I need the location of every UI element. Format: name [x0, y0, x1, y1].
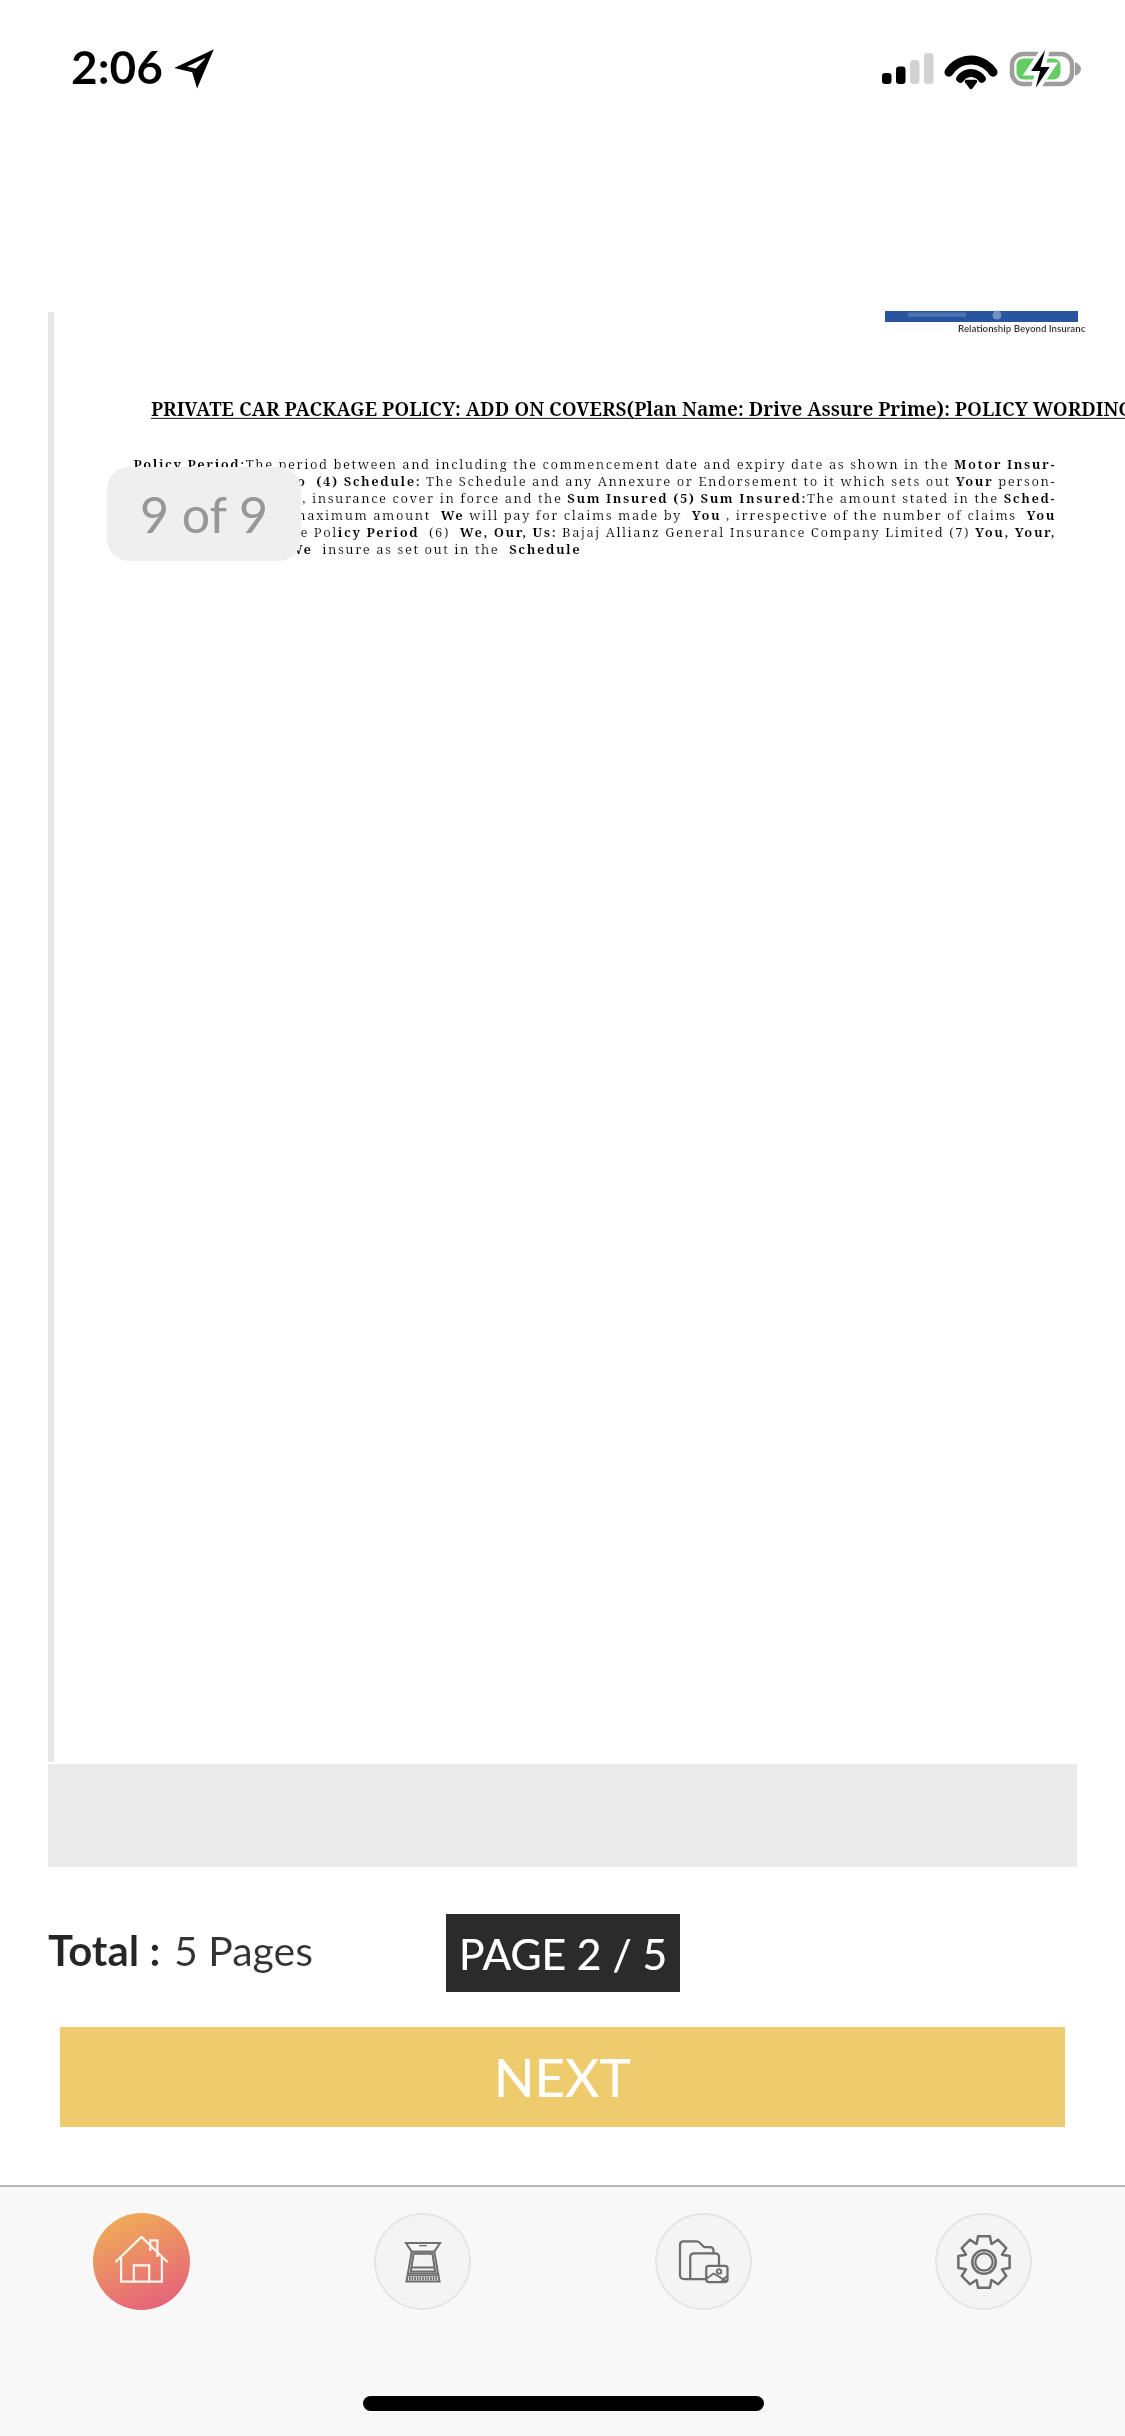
staticText: al details, insurance cover in force and…	[131, 489, 1056, 507]
button[interactable]: Home	[93, 2213, 190, 2310]
staticText: 9 of 9	[140, 484, 269, 544]
button[interactable]: Settings	[935, 2213, 1032, 2310]
staticText: ance Po (4) Schedule: The Schedule and a…	[131, 472, 1056, 490]
button[interactable]: Documents	[655, 2213, 752, 2310]
staticText: ule as the maximum amount We will pay fo…	[131, 506, 1056, 524]
staticText: make during the Policy Period (6) We, Ou…	[131, 523, 1056, 541]
staticText: PAGE 2 / 5	[459, 1928, 668, 1979]
button[interactable]: Scan	[374, 2213, 471, 2310]
staticText: PRIVATE CAR PACKAGE POLICY: ADD ON COVER…	[151, 396, 1125, 422]
button[interactable]: PAGE 2 / 5	[446, 1914, 680, 1992]
staticText: Policy Period:The period between and inc…	[131, 455, 1056, 473]
staticText: 5 Pages	[174, 1926, 314, 1975]
button[interactable]: Document page preview	[48, 300, 1077, 1762]
button[interactable]: NEXT	[60, 2027, 1065, 2127]
staticText: Total :	[48, 1925, 161, 1975]
staticText: NEXT	[494, 2045, 631, 2109]
staticText: ured, as the person We insure as set out…	[131, 540, 1056, 558]
staticText: 2:06	[71, 39, 163, 94]
staticText: Relationship Beyond Insuranc	[958, 322, 1086, 334]
